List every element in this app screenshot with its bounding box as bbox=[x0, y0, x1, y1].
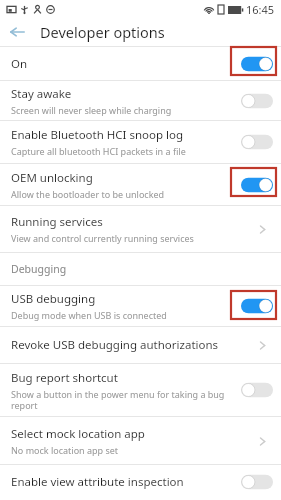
staticText: View and control currently running servi… bbox=[11, 232, 194, 244]
button[interactable]: Toggle on bbox=[241, 56, 273, 72]
button[interactable]: Stay awake bbox=[0, 81, 281, 120]
staticText: Stay awake bbox=[11, 86, 72, 102]
button[interactable]: Toggle off bbox=[241, 474, 273, 490]
staticText: Developer options bbox=[40, 22, 165, 42]
button[interactable]: Open bbox=[251, 430, 273, 452]
button[interactable]: Select mock location app bbox=[0, 417, 281, 464]
button[interactable]: Bug report shortcut bbox=[0, 364, 281, 416]
staticText: 16:45 bbox=[246, 2, 275, 17]
staticText: Running services bbox=[11, 214, 103, 230]
staticText: Enable view attribute inspection bbox=[11, 474, 184, 490]
staticText: Bug report shortcut bbox=[11, 370, 118, 386]
staticText: On bbox=[11, 56, 28, 72]
staticText: Debugging bbox=[11, 262, 67, 276]
button[interactable]: Back bbox=[0, 18, 34, 46]
staticText: OEM unlocking bbox=[11, 170, 93, 186]
staticText: Capture all bluetooth HCI packets in a f… bbox=[11, 145, 186, 157]
staticText: Allow the bootloader to be unlocked bbox=[11, 188, 165, 200]
button[interactable]: Toggle on bbox=[241, 298, 273, 314]
button[interactable]: Toggle off bbox=[241, 382, 273, 398]
button[interactable]: Revoke USB debugging authorizations bbox=[0, 327, 281, 363]
staticText: Show a button in the power menu for taki… bbox=[11, 388, 235, 411]
button[interactable]: USB debugging bbox=[0, 286, 281, 326]
button[interactable]: OEM unlocking bbox=[0, 164, 281, 205]
button[interactable]: Running services bbox=[0, 206, 281, 252]
button[interactable]: Open bbox=[251, 218, 273, 240]
button[interactable]: Toggle off bbox=[241, 134, 273, 150]
staticText: Screen will never sleep while charging bbox=[11, 104, 172, 116]
staticText: Revoke USB debugging authorizations bbox=[11, 337, 219, 353]
staticText: No mock location app set bbox=[11, 444, 119, 456]
staticText: USB debugging bbox=[11, 291, 96, 307]
button[interactable]: Open bbox=[251, 334, 273, 356]
button[interactable]: Enable Bluetooth HCI snoop log bbox=[0, 121, 281, 163]
staticText: Select mock location app bbox=[11, 426, 145, 442]
staticText: Debug mode when USB is connected bbox=[11, 309, 167, 321]
button[interactable]: Toggle on bbox=[241, 177, 273, 193]
button[interactable]: Toggle off bbox=[241, 93, 273, 109]
button[interactable]: Enable view attribute inspection bbox=[0, 465, 281, 499]
staticText: Enable Bluetooth HCI snoop log bbox=[11, 127, 184, 143]
button[interactable]: On bbox=[0, 47, 281, 80]
